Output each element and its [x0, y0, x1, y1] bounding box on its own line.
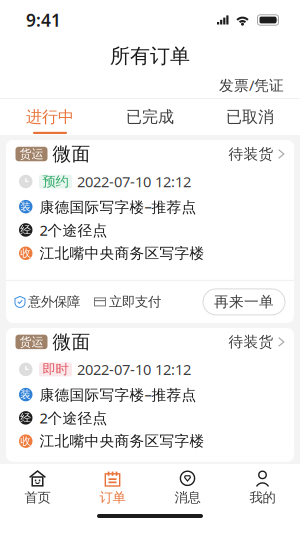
button[interactable]: 货运 — [6, 328, 294, 462]
staticText: 订单 — [99, 489, 125, 506]
staticText: 江北嘴中央商务区写字楼 — [39, 244, 204, 262]
staticText: 微面 — [52, 330, 90, 353]
button[interactable]: 进行中 — [0, 99, 100, 135]
staticText: 所有订单 — [110, 44, 190, 68]
staticText: 经 — [20, 223, 31, 236]
staticText: 9:41 — [26, 8, 61, 31]
button[interactable]: 我的 — [225, 464, 300, 512]
staticText: 已完成 — [126, 107, 174, 127]
staticText: 消息 — [174, 489, 200, 506]
staticText: 2个途径点 — [39, 220, 107, 240]
staticText: 经 — [20, 411, 31, 424]
staticText: 再来一单 — [214, 293, 274, 311]
staticText: 装 — [20, 200, 31, 213]
staticText: 进行中 — [26, 107, 74, 127]
staticText: 已取消 — [226, 107, 274, 127]
staticText: 康德国际写字楼–推荐点 — [39, 385, 196, 404]
staticText: 待装货 — [228, 333, 273, 351]
staticText: 2个途径点 — [39, 408, 107, 428]
button[interactable]: 已取消 — [200, 99, 300, 135]
staticText: 即时 — [42, 361, 68, 378]
staticText: 收 — [20, 435, 31, 448]
staticText: 货运 — [19, 334, 43, 349]
staticText: 装 — [20, 388, 31, 401]
staticText: 江北嘴中央商务区写字楼 — [39, 432, 204, 450]
staticText: 发票/凭证 — [219, 75, 284, 95]
button[interactable]: 已完成 — [100, 99, 200, 135]
staticText: 2022-07-10 12:12 — [77, 172, 191, 191]
staticText: 预约 — [42, 173, 68, 190]
staticText: 立即支付 — [109, 294, 161, 310]
staticText: 康德国际写字楼–推荐点 — [39, 197, 196, 216]
staticText: 微面 — [52, 142, 90, 165]
button[interactable]: 首页 — [0, 464, 75, 512]
staticText: 意外保障 — [28, 294, 80, 310]
button[interactable]: 再来一单 — [203, 289, 285, 315]
staticText: 首页 — [24, 489, 50, 506]
staticText: 收 — [20, 247, 31, 260]
staticText: 待装货 — [228, 145, 273, 163]
button[interactable]: 发票/凭证 — [216, 72, 287, 98]
button[interactable]: 消息 — [150, 464, 225, 512]
button[interactable]: 货运 — [6, 140, 294, 323]
staticText: 我的 — [249, 489, 275, 506]
button[interactable]: 订单 — [75, 464, 150, 512]
staticText: 2022-07-10 12:12 — [77, 360, 191, 379]
staticText: 货运 — [19, 147, 43, 161]
